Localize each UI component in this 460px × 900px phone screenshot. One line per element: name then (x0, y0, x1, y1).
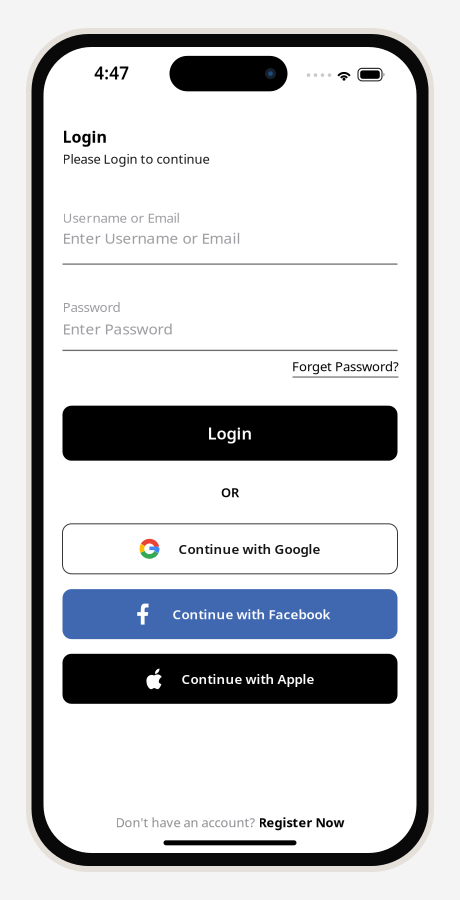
button[interactable]: Username or Email (62, 209, 397, 227)
button[interactable]: Continue with Apple (62, 654, 397, 704)
staticText: Login (62, 126, 106, 147)
button[interactable]: Forget Password? (290, 357, 400, 378)
staticText: Continue with Facebook (172, 605, 330, 623)
staticText: Forget Password? (292, 357, 399, 375)
staticText: Username or Email (62, 209, 179, 227)
staticText: Please Login to continue (62, 150, 209, 168)
staticText: OR (221, 483, 239, 501)
staticText: Enter Username or Email (62, 227, 240, 248)
staticText: Register Now (258, 813, 344, 831)
staticText: Login (207, 422, 252, 444)
button[interactable]: Don't have an account? (115, 813, 344, 831)
button[interactable]: Continue with Facebook (62, 589, 397, 639)
staticText: 4:47 (94, 61, 129, 84)
staticText: Enter Password (62, 318, 172, 339)
button[interactable]: Login (62, 406, 397, 461)
button[interactable]: Continue with Google (62, 524, 397, 574)
staticText: Continue with Apple (181, 670, 314, 688)
staticText: Password (62, 298, 120, 316)
staticText: Continue with Google (178, 540, 320, 558)
staticText: Don't have an account? (115, 813, 258, 831)
button[interactable]: Password (62, 298, 397, 316)
